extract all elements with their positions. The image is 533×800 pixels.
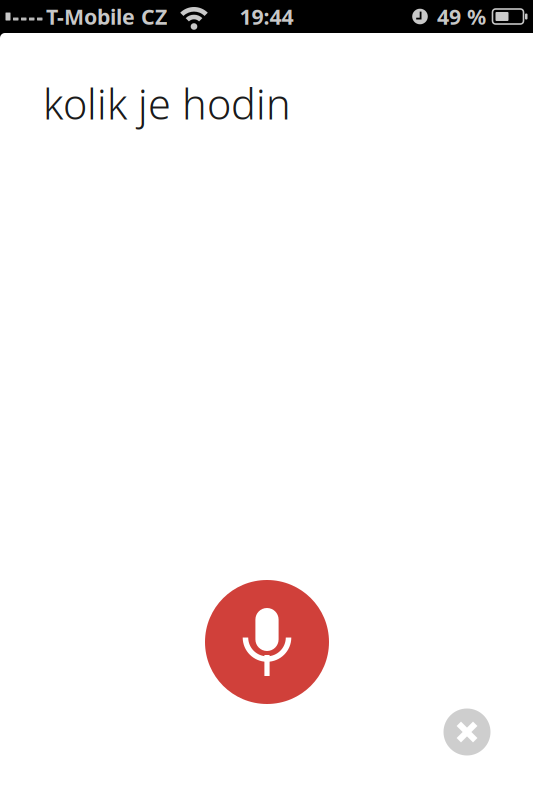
staticText: 49 % [437,2,486,31]
staticText: T-Mobile CZ [46,2,167,31]
staticText: kolik je hodin [43,76,291,131]
button[interactable]: Voice input [205,580,329,704]
button[interactable]: kolik je hodin [0,33,533,131]
staticText: 19:44 [239,2,293,31]
button[interactable]: Close [443,708,490,755]
